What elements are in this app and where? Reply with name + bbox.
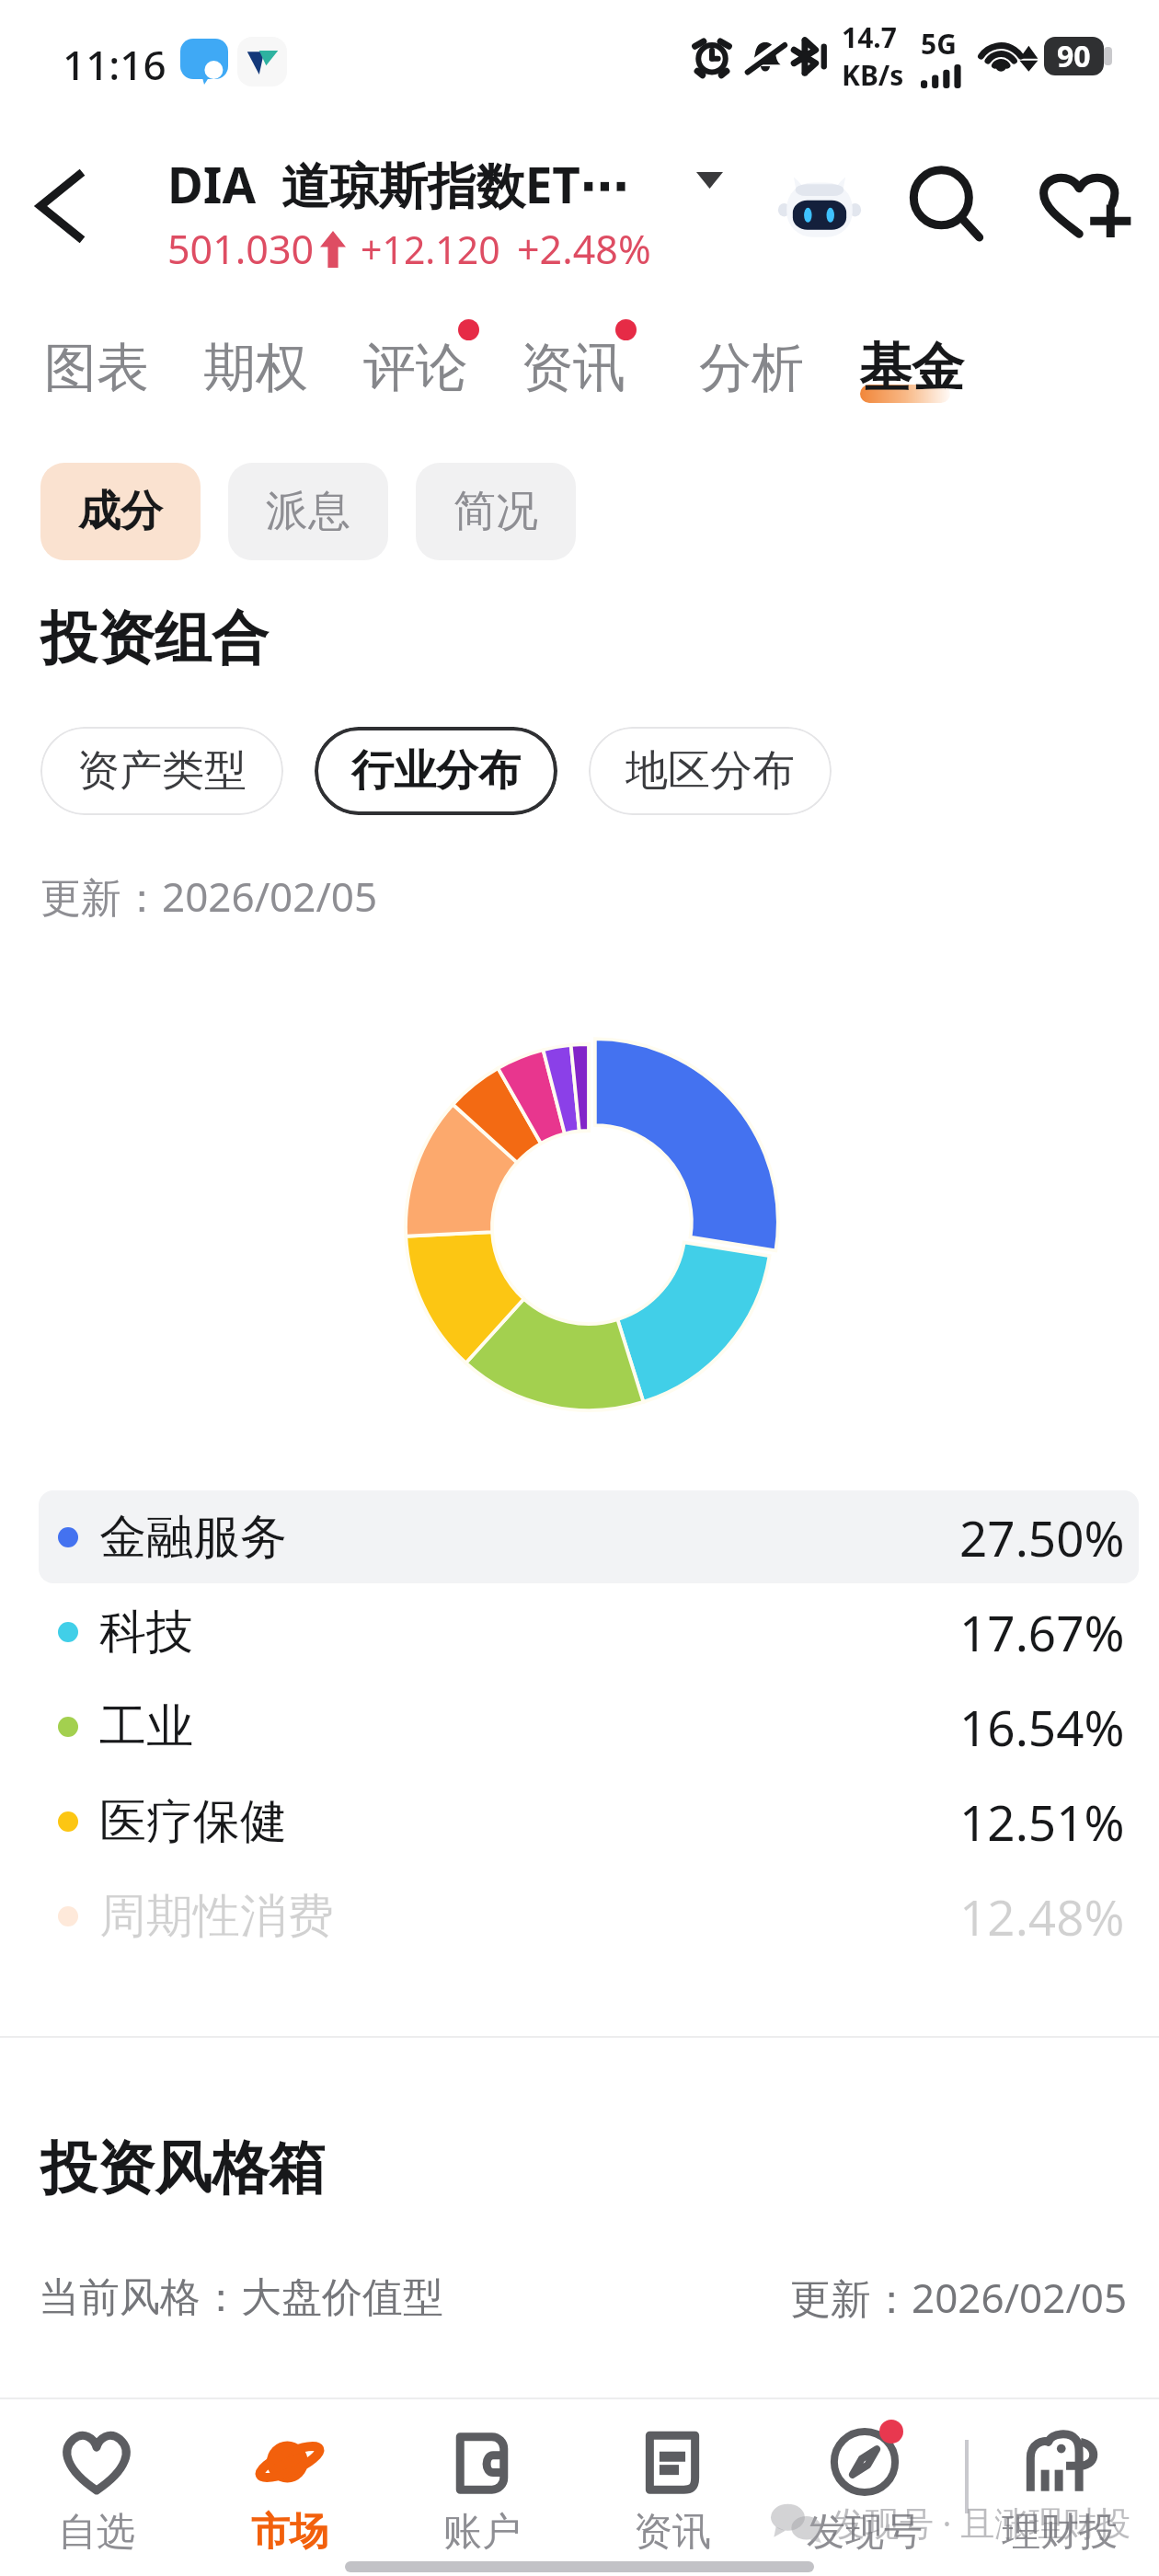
- staticText: 12.51%: [959, 1788, 1125, 1855]
- staticText: +2.48%: [517, 222, 651, 276]
- staticText: 图表: [44, 335, 149, 401]
- button[interactable]: 派息: [228, 463, 388, 560]
- button[interactable]: AI assistant: [768, 152, 871, 255]
- button[interactable]: 地区分布: [589, 727, 832, 815]
- button[interactable]: 行业分布: [315, 727, 557, 815]
- staticText: +12.120: [361, 224, 500, 275]
- staticText: 行业分布: [351, 744, 521, 798]
- staticText: 90: [1057, 36, 1091, 76]
- staticText: 12.48%: [959, 1883, 1125, 1949]
- staticText: 评论: [363, 335, 468, 401]
- staticText: DIA 道琼斯指数ET⋯: [167, 151, 629, 217]
- staticText: 更新：2026/02/05: [790, 2270, 1128, 2325]
- button[interactable]: Search: [899, 152, 1002, 255]
- button[interactable]: 成分: [40, 463, 201, 560]
- button[interactable]: 评论: [357, 322, 475, 418]
- staticText: 发现号 · 且涨理财投: [832, 2499, 1131, 2546]
- staticText: 投资组合: [40, 603, 269, 674]
- staticText: 501.030: [167, 222, 315, 276]
- staticText: 简况: [453, 485, 538, 538]
- staticText: 17.67%: [959, 1599, 1125, 1665]
- button[interactable]: 基金: [853, 322, 970, 418]
- staticText: 派息: [266, 485, 350, 538]
- staticText: 工业: [99, 1697, 193, 1756]
- button[interactable]: 简况: [416, 463, 576, 560]
- staticText: 期权: [203, 335, 308, 401]
- button[interactable]: 图表: [38, 322, 155, 418]
- staticText: 发现号: [807, 2508, 923, 2557]
- staticText: 分析: [699, 335, 804, 401]
- button[interactable]: Add to watchlist: [1030, 152, 1133, 255]
- staticText: 金融服务: [99, 1508, 287, 1567]
- button[interactable]: 科技: [39, 1585, 1139, 1678]
- staticText: 成分: [78, 485, 163, 538]
- staticText: 自选: [58, 2508, 135, 2557]
- button[interactable]: 市场: [198, 2405, 382, 2570]
- button[interactable]: 期权: [197, 322, 315, 418]
- staticText: KB/s: [842, 56, 904, 94]
- button[interactable]: 医疗保健: [39, 1775, 1139, 1868]
- staticText: 投资风格箱: [40, 2133, 326, 2204]
- staticText: 资讯: [634, 2508, 711, 2557]
- staticText: 14.7: [842, 18, 897, 56]
- staticText: 资讯: [521, 335, 625, 401]
- staticText: 资产类型: [77, 744, 247, 798]
- staticText: 16.54%: [959, 1694, 1125, 1760]
- button[interactable]: 周期性消费: [39, 1869, 1139, 1962]
- staticText: 市场: [251, 2508, 328, 2557]
- button[interactable]: Back: [11, 158, 107, 254]
- button[interactable]: 理财投: [968, 2405, 1152, 2570]
- staticText: 医疗保健: [99, 1792, 287, 1851]
- button[interactable]: 自选: [5, 2405, 189, 2570]
- button[interactable]: 资讯: [514, 322, 632, 418]
- staticText: 5G: [921, 25, 957, 63]
- staticText: 理财投: [1002, 2508, 1118, 2557]
- staticText: 当前风格：大盘价值型: [39, 2272, 443, 2323]
- staticText: 地区分布: [625, 744, 795, 798]
- button[interactable]: 金融服务: [39, 1490, 1139, 1583]
- staticText: 基金: [859, 335, 964, 401]
- staticText: 周期性消费: [99, 1887, 334, 1946]
- button[interactable]: 分析: [693, 322, 810, 418]
- staticText: 27.50%: [959, 1504, 1125, 1570]
- button[interactable]: 资讯: [580, 2405, 764, 2570]
- staticText: 11:16: [63, 37, 166, 92]
- staticText: 更新：2026/02/05: [40, 868, 378, 924]
- button[interactable]: 资产类型: [40, 727, 283, 815]
- staticText: 账户: [443, 2508, 521, 2557]
- button[interactable]: 工业: [39, 1680, 1139, 1773]
- staticText: 科技: [99, 1603, 193, 1662]
- button[interactable]: 账户: [390, 2405, 574, 2570]
- button[interactable]: 发现号: [773, 2405, 957, 2570]
